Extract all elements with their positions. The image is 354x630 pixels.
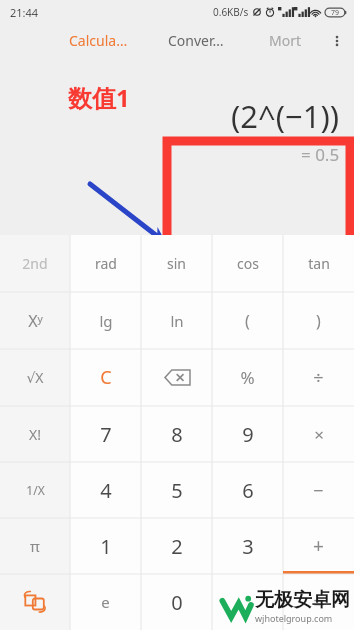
button[interactable]: rad (70, 235, 141, 292)
staticText: − (313, 478, 324, 503)
button[interactable]: 1 (70, 518, 141, 574)
button[interactable]: 7 (70, 406, 141, 462)
button[interactable]: Conver… (147, 24, 244, 57)
button[interactable]: 8 (141, 406, 212, 462)
staticText: 0.6KB/s (213, 5, 249, 19)
button[interactable]: 5 (141, 462, 212, 518)
staticText: ÷ (313, 365, 324, 390)
button[interactable]: C (70, 349, 141, 406)
staticText: tan (308, 254, 330, 273)
staticText: 6 (242, 477, 254, 504)
button[interactable]: Backspace (141, 349, 212, 406)
button[interactable]: Xʸ (0, 292, 70, 349)
button[interactable]: − (283, 462, 354, 518)
button[interactable]: Mort (244, 24, 326, 57)
staticText: 4 (100, 477, 112, 504)
staticText: Mort (269, 31, 302, 50)
button[interactable]: More options (326, 24, 348, 57)
staticText: 1 (100, 533, 112, 560)
staticText: 7 (100, 421, 112, 448)
button[interactable]: . (212, 574, 283, 630)
button[interactable]: √X (0, 349, 70, 406)
staticText: 9 (242, 421, 254, 448)
staticText: 5 (171, 477, 183, 504)
staticText: ( (245, 310, 250, 332)
staticText: sin (167, 254, 186, 273)
staticText: 0 (171, 589, 183, 616)
staticText: 1/X (26, 482, 45, 498)
staticText: 2 (171, 533, 183, 560)
staticText: 数值1 (68, 81, 130, 114)
button[interactable]: sin (141, 235, 212, 292)
button[interactable]: X! (0, 406, 70, 462)
button[interactable]: lg (70, 292, 141, 349)
staticText: √X (26, 368, 44, 387)
button[interactable]: 3 (212, 518, 283, 574)
button[interactable]: tan (283, 235, 354, 292)
staticText: = (313, 589, 325, 616)
staticText: 无极安卓网 (255, 588, 350, 612)
staticText: × (314, 423, 324, 446)
staticText: 8 (171, 421, 183, 448)
button[interactable]: ) (283, 292, 354, 349)
staticText: ) (316, 310, 321, 332)
staticText: Calcula… (69, 31, 128, 50)
button[interactable]: 1/X (0, 462, 70, 518)
staticText: 2nd (22, 254, 48, 273)
button[interactable]: Convert (0, 574, 70, 630)
button[interactable]: π (0, 518, 70, 574)
staticText: rad (95, 254, 117, 273)
staticText: X! (29, 425, 41, 444)
button[interactable]: = (283, 574, 354, 630)
button[interactable]: ( (212, 292, 283, 349)
button[interactable]: ln (141, 292, 212, 349)
staticText: 79 (331, 8, 340, 18)
button[interactable]: ÷ (283, 349, 354, 406)
button[interactable]: % (212, 349, 283, 406)
staticText: Xʸ (28, 310, 43, 332)
staticText: (2^(−1)) (231, 95, 340, 137)
staticText: + (313, 533, 324, 559)
staticText: % (240, 366, 255, 389)
button[interactable]: cos (212, 235, 283, 292)
button[interactable]: 4 (70, 462, 141, 518)
staticText: wjhotelgroup.com (255, 612, 333, 624)
button[interactable]: 0 (141, 574, 212, 630)
staticText: = 0.5 (301, 143, 340, 166)
staticText: π (30, 536, 40, 556)
staticText: cos (237, 254, 259, 273)
staticText: 3 (242, 533, 254, 560)
staticText: C (100, 365, 112, 390)
button[interactable]: 2 (141, 518, 212, 574)
staticText: lg (99, 311, 113, 331)
button[interactable]: e (70, 574, 141, 630)
button[interactable]: × (283, 406, 354, 462)
staticText: Conver… (168, 31, 224, 50)
staticText: e (101, 592, 110, 612)
button[interactable]: + (283, 518, 354, 574)
button[interactable]: Calcula… (50, 24, 147, 57)
button[interactable]: 2nd (0, 235, 70, 292)
staticText: ln (170, 311, 184, 331)
button[interactable]: 6 (212, 462, 283, 518)
staticText: . (245, 589, 251, 616)
button[interactable]: 9 (212, 406, 283, 462)
staticText: 21:44 (10, 5, 39, 20)
